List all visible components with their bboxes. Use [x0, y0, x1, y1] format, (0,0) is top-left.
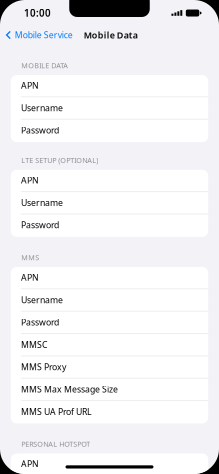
button[interactable]: APN [11, 170, 208, 192]
staticText: Username [21, 294, 63, 306]
button[interactable]: Password [11, 214, 208, 237]
staticText: MOBILE DATA [21, 61, 68, 70]
staticText: MMS Max Message Size [21, 383, 118, 395]
button[interactable]: Username [11, 192, 208, 214]
button[interactable]: MMS Proxy [11, 356, 208, 379]
staticText: LTE SETUP (OPTIONAL) [21, 155, 98, 165]
staticText: 10:00 [24, 6, 51, 20]
staticText: MMS UA Prof URL [21, 406, 92, 417]
button[interactable]: MMS Max Message Size [11, 379, 208, 401]
button[interactable]: APN [11, 267, 208, 289]
staticText: Password [21, 316, 59, 328]
button[interactable]: Mobile Service [0, 26, 77, 44]
staticText: MMSC [21, 339, 47, 350]
button[interactable]: MMS UA Prof URL [11, 401, 208, 423]
button[interactable]: Username [11, 289, 208, 312]
staticText: APN [21, 271, 39, 283]
button[interactable]: Password [11, 120, 208, 142]
staticText: Mobile Data [84, 29, 138, 41]
staticText: PERSONAL HOTSPOT [21, 439, 90, 449]
staticText: APN [21, 80, 39, 91]
button[interactable]: APN [11, 75, 208, 97]
staticText: Password [21, 219, 59, 231]
staticText: MMS Proxy [21, 361, 66, 373]
button[interactable]: MMSC [11, 334, 208, 356]
staticText: Mobile Service [15, 29, 73, 41]
button[interactable]: APN [11, 453, 208, 474]
staticText: Username [21, 197, 63, 208]
staticText: MMS [21, 253, 39, 262]
staticText: APN [21, 174, 39, 186]
staticText: Username [21, 102, 63, 114]
staticText: APN [21, 458, 39, 470]
staticText: Password [21, 124, 59, 136]
button[interactable]: Username [11, 97, 208, 120]
button[interactable]: Password [11, 312, 208, 334]
